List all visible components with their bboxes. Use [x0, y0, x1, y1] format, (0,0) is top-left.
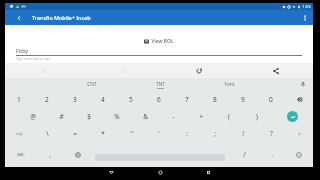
staticText: + — [199, 112, 203, 121]
button[interactable]: \ — [33, 125, 61, 142]
staticText: # — [59, 112, 64, 121]
button[interactable]: 1 — [5, 90, 33, 108]
button[interactable]: 0 — [257, 90, 285, 108]
button[interactable]: - — [159, 108, 187, 125]
button[interactable]: 5 — [117, 90, 145, 108]
button[interactable]: More options — [297, 10, 312, 25]
button[interactable]: Backspace — [285, 90, 313, 108]
button[interactable]: ( — [215, 108, 243, 125]
staticText: Fitby — [16, 47, 29, 54]
button[interactable]: Change language — [64, 142, 91, 167]
staticText: ? — [270, 129, 273, 138]
button[interactable]: / — [230, 142, 258, 167]
button[interactable]: View BOL — [144, 36, 174, 46]
staticText: ) — [256, 112, 258, 121]
staticText: . — [271, 150, 273, 159]
button[interactable]: Home — [147, 167, 173, 177]
button[interactable]: # — [47, 108, 75, 125]
staticText: = — [73, 129, 77, 138]
button[interactable]: $ — [75, 108, 103, 125]
button[interactable]: TNT — [126, 78, 195, 90]
staticText: @ — [30, 112, 36, 121]
button[interactable]: @ — [19, 108, 47, 125]
staticText: ( — [228, 112, 230, 121]
button[interactable]: 6 — [145, 90, 173, 108]
button[interactable]: Voice input — [293, 78, 313, 90]
button[interactable]: & — [131, 108, 159, 125]
button[interactable]: Emoji — [285, 142, 313, 167]
staticText: 2 — [45, 95, 49, 104]
button[interactable]: 8 — [201, 90, 229, 108]
staticText: 7 — [185, 95, 189, 104]
staticText: * — [101, 129, 105, 138]
staticText: View BOL — [151, 38, 174, 45]
staticText: $ — [87, 112, 91, 121]
staticText: ' — [158, 129, 160, 138]
staticText: 3 — [73, 95, 77, 104]
staticText: : — [186, 129, 188, 138]
staticText: , — [49, 150, 51, 159]
staticText: 1 — [17, 95, 21, 104]
staticText: ! — [242, 129, 244, 138]
button[interactable]: Share — [269, 64, 282, 77]
button[interactable]: ) — [243, 108, 271, 125]
button[interactable]: Enter — [287, 111, 298, 122]
staticText: 9 — [241, 95, 245, 104]
button[interactable]: + — [187, 108, 215, 125]
button[interactable]: ? — [257, 125, 285, 142]
button[interactable]: > — [285, 125, 313, 142]
staticText: Font — [224, 81, 235, 88]
button[interactable]: = — [61, 125, 89, 142]
staticText: 1:53 — [302, 4, 311, 10]
button[interactable]: Space — [91, 142, 230, 167]
staticText: & — [143, 112, 148, 121]
staticText: Transflo Mobile+ Incab — [32, 14, 91, 21]
staticText: / — [243, 150, 246, 159]
button[interactable]: " — [117, 125, 145, 142]
button[interactable]: ABC — [5, 142, 36, 167]
staticText: TNT — [156, 81, 165, 88]
button[interactable]: 2 — [33, 90, 61, 108]
staticText: 8 — [213, 95, 217, 104]
button[interactable]: Refresh — [192, 64, 205, 77]
button[interactable]: 9 — [229, 90, 257, 108]
button[interactable]: : — [173, 125, 201, 142]
button[interactable]: * — [89, 125, 117, 142]
staticText: ABC — [17, 152, 25, 157]
button[interactable]: ! — [229, 125, 257, 142]
staticText: 0 — [269, 95, 273, 104]
button[interactable]: ; — [201, 125, 229, 142]
button[interactable]: Recent apps — [195, 167, 221, 177]
staticText: =\< — [16, 131, 23, 137]
staticText: " — [130, 129, 133, 138]
button[interactable]: 7 — [173, 90, 201, 108]
staticText: \ — [46, 129, 49, 138]
staticText: - — [172, 112, 175, 121]
staticText: 6 — [157, 95, 161, 104]
button[interactable]: CNT — [57, 78, 126, 90]
button[interactable]: % — [103, 108, 131, 125]
staticText: 5 — [129, 95, 133, 104]
staticText: CNT — [87, 81, 97, 88]
button[interactable]: Back — [98, 167, 124, 177]
button[interactable]: Navigate up — [12, 11, 25, 24]
staticText: > — [298, 131, 301, 137]
staticText: % — [114, 112, 120, 121]
staticText: 4 — [101, 95, 105, 104]
button[interactable]: Font — [195, 78, 264, 90]
staticText: ; — [214, 129, 216, 138]
staticText: Type name here to sign — [16, 57, 51, 61]
button[interactable]: 3 — [61, 90, 89, 108]
button[interactable]: 4 — [89, 90, 117, 108]
button[interactable]: =\< — [5, 125, 33, 142]
